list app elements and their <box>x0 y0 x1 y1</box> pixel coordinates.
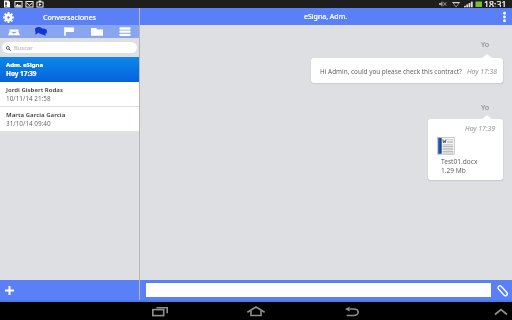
button[interactable]: Flagged <box>55 25 83 38</box>
staticText: Jordi Gisbert Rodas <box>6 86 63 94</box>
button[interactable]: Adm. eSigna <box>0 57 139 82</box>
button[interactable]: Marta Garcia Garcia <box>0 107 139 131</box>
button[interactable]: Settings <box>0 9 16 25</box>
button[interactable]: Hoy 17:39 <box>428 119 503 180</box>
staticText: Hoy 17:39 <box>437 124 495 133</box>
staticText: 31/10/14 09:40 <box>6 119 51 128</box>
staticText: Hoy 17:39 <box>6 69 37 78</box>
staticText: 1.29 Mb <box>441 166 466 175</box>
staticText: 18:31 <box>484 0 507 7</box>
staticText: Hoy 17:38 <box>467 67 497 76</box>
staticText: Buscar <box>14 44 33 52</box>
staticText: Hi Admin, could you please check this co… <box>320 67 462 76</box>
button[interactable]: More options <box>497 8 512 25</box>
staticText: Conversaciones <box>16 12 123 22</box>
staticText: Test01.docx <box>441 157 478 166</box>
staticText: eSigna, Adm. <box>304 12 348 22</box>
button[interactable]: Hi Admin, could you please check this co… <box>311 58 503 83</box>
button[interactable]: Back <box>345 306 359 316</box>
button[interactable]: Show navigation <box>495 309 507 315</box>
button[interactable]: Folders <box>83 25 111 38</box>
button[interactable]: New conversation <box>0 280 139 300</box>
button[interactable]: Menu <box>111 25 139 38</box>
button[interactable]: Attach <box>491 280 512 300</box>
staticText: Adm. eSigna <box>6 61 44 69</box>
button[interactable]: Recents <box>152 306 168 316</box>
button[interactable]: Inbox <box>0 25 27 38</box>
staticText: Yo <box>481 39 490 49</box>
staticText: Marta Garcia Garcia <box>6 111 66 119</box>
staticText: 10/11/14 21:58 <box>6 94 51 103</box>
button[interactable]: Buscar <box>2 42 137 53</box>
button[interactable]: Home <box>247 306 265 316</box>
button[interactable]: Jordi Gisbert Rodas <box>0 82 139 106</box>
staticText: Yo <box>481 102 490 112</box>
button[interactable]: Conversations <box>27 25 55 38</box>
